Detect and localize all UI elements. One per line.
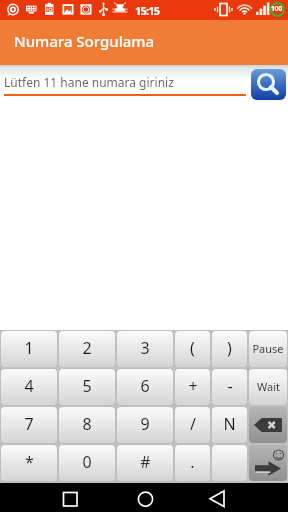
staticText: 15:15 — [135, 3, 160, 18]
staticText: ) — [227, 337, 232, 359]
staticText: - — [227, 375, 233, 397]
button[interactable]: ) — [212, 331, 247, 367]
staticText: Numara Sorgulama — [14, 31, 155, 51]
button[interactable]: Lütfen 11 hane numara giriniz — [4, 74, 174, 90]
button[interactable]: ( — [175, 331, 210, 367]
button[interactable]: Recents — [48, 483, 92, 512]
staticText: 4 — [24, 375, 34, 397]
staticText: 100 — [271, 4, 282, 14]
button[interactable]: Home — [122, 483, 166, 512]
staticText: 5 — [82, 375, 92, 397]
button[interactable]: * — [1, 445, 57, 481]
button[interactable]: N — [212, 407, 247, 443]
staticText: 7 — [24, 413, 34, 435]
staticText: 1 — [24, 337, 34, 359]
staticText: ( — [190, 337, 195, 359]
button[interactable]: Wait — [249, 369, 287, 405]
staticText: 8 — [82, 413, 92, 435]
button[interactable]: 3 — [117, 331, 173, 367]
staticText: / — [190, 413, 196, 435]
staticText: Pause — [252, 341, 284, 356]
staticText: 2 — [82, 337, 92, 359]
button[interactable]: # — [117, 445, 173, 481]
button[interactable]: 6 — [117, 369, 173, 405]
button[interactable]: 7 — [1, 407, 57, 443]
button[interactable]: / — [175, 407, 210, 443]
button[interactable]: Numara Sorgulama — [0, 20, 288, 65]
staticText: 0 — [82, 451, 92, 473]
button[interactable]: 5 — [59, 369, 115, 405]
button[interactable]: + — [175, 369, 210, 405]
staticText: Wait — [257, 379, 280, 394]
staticText: 6 — [140, 375, 150, 397]
button[interactable]: 8 — [59, 407, 115, 443]
button[interactable]: 2 — [59, 331, 115, 367]
staticText: 9 — [140, 413, 150, 435]
button[interactable]: 0 — [59, 445, 115, 481]
button[interactable] — [212, 445, 247, 481]
staticText: * — [25, 451, 34, 473]
staticText: # — [140, 451, 151, 473]
button[interactable]: Backspace — [249, 407, 287, 443]
staticText: N — [223, 413, 236, 435]
staticText: + — [188, 375, 198, 397]
button[interactable]: Back — [193, 483, 237, 512]
button[interactable]: Pause — [249, 331, 287, 367]
button[interactable]: - — [212, 369, 247, 405]
button[interactable]: 4 — [1, 369, 57, 405]
button[interactable]: Enter — [249, 445, 287, 481]
staticText: 3 — [140, 337, 150, 359]
button[interactable]: Ara — [251, 69, 286, 100]
button[interactable]: 9 — [117, 407, 173, 443]
button[interactable]: 1 — [1, 331, 57, 367]
staticText: . — [190, 451, 195, 473]
button[interactable]: . — [175, 445, 210, 481]
